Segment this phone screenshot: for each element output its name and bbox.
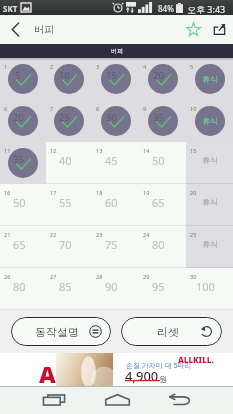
staticText: 70 (59, 237, 72, 252)
button[interactable]: 5 (186, 58, 233, 100)
staticText: 6 (4, 105, 8, 112)
button[interactable]: 8 (92, 100, 139, 142)
staticText: 휴식 (202, 116, 218, 126)
button[interactable]: Share (206, 15, 233, 44)
staticText: 10 (59, 69, 70, 82)
staticText: 65 (152, 195, 165, 210)
staticText: 15 (190, 147, 197, 154)
staticText: 18 (96, 189, 103, 196)
button[interactable]: Favorite (180, 15, 206, 44)
staticText: 2 (50, 63, 54, 70)
staticText: 60 (105, 195, 118, 210)
staticText: 버피 (111, 47, 123, 55)
staticText: 40 (59, 153, 72, 168)
staticText: ALLKILL. (178, 354, 214, 365)
button[interactable]: 29 (139, 268, 186, 310)
button[interactable]: Back (158, 386, 202, 414)
button[interactable]: 6 (0, 100, 46, 142)
staticText: 23 (96, 231, 103, 238)
button[interactable]: 25 (186, 226, 233, 268)
staticText: 4,900 (125, 367, 159, 385)
button[interactable]: 12 (46, 142, 92, 184)
staticText: 10 (190, 105, 197, 112)
button[interactable]: 9 (139, 100, 186, 142)
staticText: 17 (50, 189, 57, 196)
button[interactable]: 7 (46, 100, 92, 142)
button[interactable]: 13 (92, 142, 139, 184)
staticText: 100 (196, 279, 215, 294)
staticText: 80 (152, 237, 165, 252)
staticText: 휴식 (202, 74, 218, 84)
button[interactable]: Home (95, 386, 139, 414)
button[interactable]: 15 (186, 142, 233, 184)
staticText: 90 (105, 279, 118, 294)
staticText: 84% (158, 3, 174, 14)
button[interactable]: 23 (92, 226, 139, 268)
staticText: 65 (13, 237, 26, 252)
staticText: 75 (105, 237, 118, 252)
staticText: 20 (190, 189, 197, 196)
staticText: 24 (143, 231, 150, 238)
staticText: 13 (96, 147, 103, 154)
button[interactable]: Recent apps (32, 386, 76, 414)
staticText: 3 (96, 63, 100, 70)
staticText: 27 (50, 273, 57, 280)
button[interactable]: Back (0, 15, 30, 44)
staticText: 35 (153, 111, 164, 124)
staticText: 15 (106, 69, 117, 82)
button[interactable]: 27 (46, 268, 92, 310)
button[interactable]: 28 (92, 268, 139, 310)
button[interactable]: 18 (92, 184, 139, 226)
staticText: 35 (13, 153, 24, 166)
staticText: 55 (59, 195, 72, 210)
button[interactable]: 16 (0, 184, 46, 226)
staticText: 14 (143, 147, 150, 154)
staticText: 휴식 (202, 197, 218, 207)
staticText: 20 (153, 69, 164, 82)
staticText: 오후 3:43 (187, 3, 226, 15)
staticText: 4 (143, 63, 147, 70)
button[interactable]: 2 (46, 58, 92, 100)
staticText: 20 (13, 111, 24, 124)
staticText: 28 (96, 273, 103, 280)
staticText: 80 (13, 279, 26, 294)
button[interactable]: 14 (139, 142, 186, 184)
button[interactable]: 11 (0, 142, 46, 184)
staticText: 5 (190, 63, 194, 70)
button[interactable]: 동작설명 (11, 317, 111, 346)
staticText: 30 (106, 111, 117, 124)
button[interactable]: 리셋 (121, 317, 222, 346)
staticText: 5 (15, 69, 21, 82)
staticText: 리셋 (157, 325, 179, 339)
staticText: 25 (190, 231, 197, 238)
staticText: 버피 (34, 23, 54, 36)
staticText: 7 (50, 105, 54, 112)
staticText: 9 (143, 105, 147, 112)
staticText: 45 (105, 153, 118, 168)
staticText: 휴식 (202, 239, 218, 249)
staticText: 30 (190, 273, 197, 280)
staticText: 동작설명 (35, 325, 79, 339)
staticText: 휴식 (202, 155, 218, 165)
staticText: 50 (13, 195, 26, 210)
staticText: 85 (59, 279, 72, 294)
staticText: 95 (152, 279, 165, 294)
staticText: 원 (159, 374, 167, 384)
button[interactable]: 1 (0, 58, 46, 100)
button[interactable]: 3 (92, 58, 139, 100)
staticText: 19 (143, 189, 150, 196)
button[interactable]: 24 (139, 226, 186, 268)
staticText: 26 (4, 273, 11, 280)
button[interactable]: 22 (46, 226, 92, 268)
button[interactable]: A (0, 353, 233, 386)
button[interactable]: 19 (139, 184, 186, 226)
button[interactable]: 30 (186, 268, 233, 310)
button[interactable]: 10 (186, 100, 233, 142)
button[interactable]: 20 (186, 184, 233, 226)
button[interactable]: 4 (139, 58, 186, 100)
staticText: 29 (143, 273, 150, 280)
button[interactable]: 26 (0, 268, 46, 310)
staticText: 16 (4, 189, 11, 196)
button[interactable]: 17 (46, 184, 92, 226)
button[interactable]: 21 (0, 226, 46, 268)
